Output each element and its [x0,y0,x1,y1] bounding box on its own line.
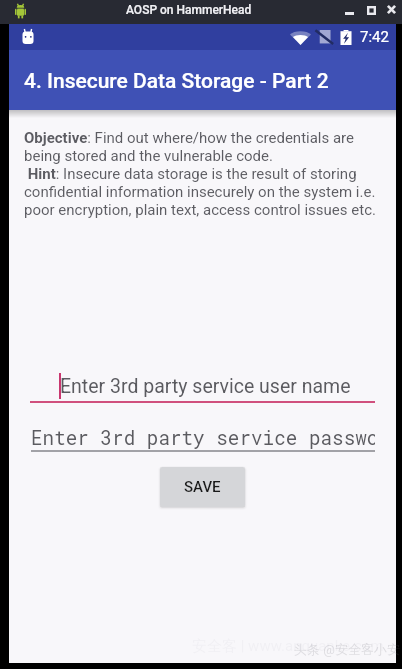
button[interactable]: Enter 3rd party service user name [30,372,375,405]
button[interactable]: Maximize [360,0,381,24]
button[interactable]: Minimize [338,0,359,24]
button[interactable]: Close [381,0,402,24]
button[interactable]: Enter 3rd party service passwo [31,422,375,455]
staticText: 7:42 [360,28,389,46]
staticText: Enter 3rd party service user name [60,375,351,398]
staticText: 安全客 | www.anquanke.com [192,637,384,656]
staticText: 头条 @安全客小安 [294,641,400,657]
staticText: Enter 3rd party service passwo [31,425,375,450]
staticText: SAVE [184,478,221,496]
staticText: 4. Insecure Data Storage - Part 2 [24,69,329,94]
button[interactable]: SAVE [160,467,245,507]
staticText: AOSP on HammerHead [126,3,252,17]
staticText: Objective: Find out where/how the creden… [24,129,386,219]
